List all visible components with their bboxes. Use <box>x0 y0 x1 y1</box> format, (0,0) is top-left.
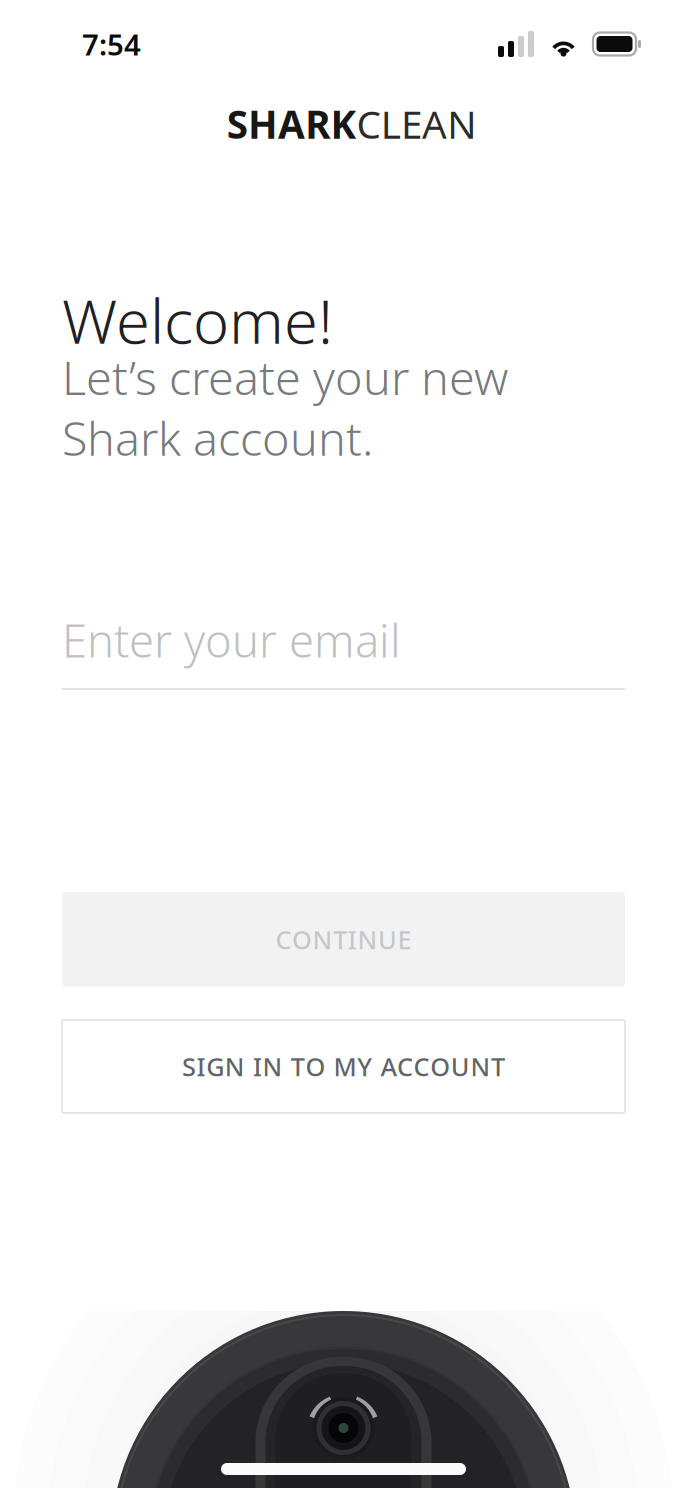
staticText: 7:54 <box>82 24 141 63</box>
staticText: Let’s create your new <box>62 346 508 408</box>
staticText: SHARK <box>227 98 356 149</box>
staticText: CONTINUE <box>275 923 412 956</box>
staticText: Enter your email <box>62 610 401 670</box>
staticText: Shark account. <box>62 407 373 469</box>
button[interactable]: SIGN IN TO MY ACCOUNT <box>62 1020 625 1113</box>
staticText: Welcome! <box>62 279 333 361</box>
staticText: SIGN IN TO MY ACCOUNT <box>182 1050 505 1083</box>
button[interactable]: CONTINUE <box>62 892 625 987</box>
staticText: CLEAN <box>356 98 476 149</box>
button[interactable]: Enter your email <box>62 610 625 690</box>
